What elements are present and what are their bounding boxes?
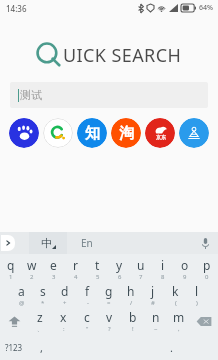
button[interactable]: Period [158, 334, 184, 360]
staticText: p [203, 257, 211, 273]
staticText: @ [19, 299, 25, 307]
button[interactable]: En [67, 232, 192, 254]
staticText: 7 [139, 273, 143, 281]
button[interactable]: l [186, 282, 208, 308]
button[interactable]: Baidu [9, 118, 39, 148]
button[interactable]: p [196, 256, 218, 282]
staticText: m [173, 309, 185, 325]
staticText: n [152, 309, 160, 325]
button[interactable]: Symbols [0, 334, 28, 360]
staticText: s [40, 283, 46, 299]
button[interactable]: w [21, 256, 42, 282]
button[interactable]: z [28, 308, 52, 334]
staticText: y [116, 257, 123, 273]
button[interactable]: s [32, 282, 54, 308]
staticText: 9 [183, 273, 187, 281]
staticText: e [50, 257, 57, 273]
staticText: d [61, 283, 69, 299]
button[interactable]: Backspace [190, 308, 218, 334]
staticText: 中 [41, 236, 52, 250]
staticText: ~ [154, 325, 158, 333]
staticText: ) [196, 299, 198, 307]
button[interactable]: Voice input [192, 232, 218, 254]
staticText: : [63, 325, 65, 333]
staticText: / [130, 299, 133, 307]
staticText: q [7, 257, 15, 273]
staticText: UICK SEARCH [63, 43, 182, 68]
button[interactable]: Zhihu [77, 118, 107, 148]
staticText: v [106, 309, 113, 325]
button[interactable]: x [52, 308, 75, 334]
button[interactable]: q [0, 256, 21, 282]
staticText: 、 [37, 325, 43, 333]
staticText: x [60, 309, 67, 325]
button[interactable]: j [142, 282, 164, 308]
staticText: 京东 [156, 134, 166, 140]
button[interactable]: m [167, 308, 190, 334]
staticText: 淘 [119, 124, 134, 143]
staticText: 6 [118, 273, 122, 281]
button[interactable]: r [64, 256, 86, 282]
staticText: ?123 [5, 342, 23, 353]
button[interactable]: d [54, 282, 76, 308]
button[interactable]: k [164, 282, 186, 308]
button[interactable]: n [144, 308, 167, 334]
staticText: a [18, 283, 25, 299]
button[interactable]: e [42, 256, 64, 282]
staticText: 64% [199, 3, 213, 13]
staticText: = [107, 299, 111, 307]
button[interactable]: Shift [0, 308, 28, 334]
staticText: , [178, 325, 180, 333]
staticText: En [81, 236, 93, 250]
staticText: r [73, 257, 78, 273]
staticText: * [41, 299, 45, 307]
staticText: - [87, 299, 89, 307]
button[interactable]: g [98, 282, 120, 308]
staticText: k [172, 283, 179, 299]
button[interactable]: h [120, 282, 142, 308]
staticText: g [105, 283, 113, 299]
staticText: o [181, 257, 189, 273]
staticText: 知 [85, 124, 100, 143]
button[interactable]: u [130, 256, 152, 282]
staticText: # [151, 299, 155, 307]
button[interactable]: Expand [1, 235, 15, 251]
button[interactable]: v [98, 308, 121, 334]
staticText: ! [132, 325, 134, 333]
button[interactable]: 360 search [43, 118, 73, 148]
staticText: 8 [161, 273, 165, 281]
staticText: 2 [30, 273, 34, 281]
button[interactable]: o [174, 256, 196, 282]
staticText: , [40, 340, 43, 355]
staticText: ? [108, 325, 111, 333]
button[interactable]: b [121, 308, 144, 334]
button[interactable]: f [76, 282, 98, 308]
button[interactable]: y [108, 256, 130, 282]
staticText: t [95, 257, 100, 273]
staticText: . [170, 340, 173, 355]
staticText: j [151, 283, 155, 299]
staticText: i [161, 257, 165, 273]
button[interactable]: 中 [29, 232, 67, 254]
button[interactable]: a [10, 282, 32, 308]
staticText: 0 [205, 273, 209, 281]
staticText: f [85, 283, 90, 299]
staticText: " [86, 325, 89, 333]
button[interactable]: Maps [179, 118, 209, 148]
staticText: l [195, 283, 199, 299]
staticText: 测试 [20, 88, 42, 102]
button[interactable]: t [86, 256, 108, 282]
staticText: 4 [74, 273, 78, 281]
staticText: z [37, 309, 43, 325]
staticText: 14:36 [6, 3, 27, 14]
button[interactable]: Taobao [111, 118, 141, 148]
staticText: u [137, 257, 145, 273]
button[interactable]: i [152, 256, 174, 282]
button[interactable]: 测试 [10, 82, 208, 108]
staticText: w [27, 257, 37, 273]
button[interactable]: c [75, 308, 98, 334]
button[interactable]: Comma [28, 334, 54, 360]
button[interactable]: JD [145, 118, 175, 148]
staticText: c [84, 309, 90, 325]
staticText: 5 [96, 273, 100, 281]
